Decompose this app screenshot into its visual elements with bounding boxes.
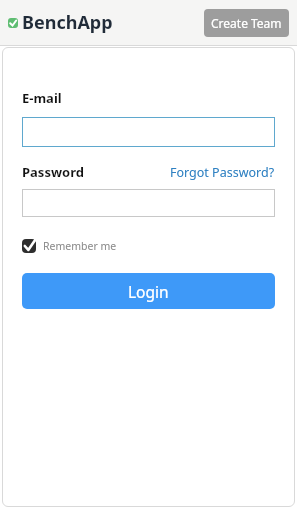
button[interactable]: Forgot Password? <box>170 164 275 181</box>
staticText: Create Team <box>211 15 282 31</box>
staticText: BenchApp <box>22 10 113 35</box>
button[interactable]: Login <box>22 273 275 309</box>
button[interactable]: Remember me <box>22 239 117 253</box>
staticText: Password <box>22 163 84 181</box>
staticText: Remember me <box>43 239 117 253</box>
staticText: Login <box>128 281 169 302</box>
staticText: E-mail <box>22 89 62 107</box>
button[interactable] <box>22 189 275 217</box>
button[interactable] <box>22 117 275 147</box>
button[interactable]: Create Team <box>204 9 289 37</box>
